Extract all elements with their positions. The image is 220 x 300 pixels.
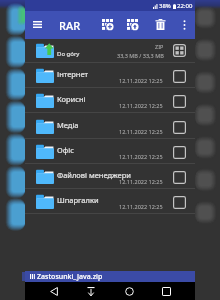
- button[interactable]: Шпаргалки: [25, 189, 195, 214]
- button[interactable]: Open navigation menu: [27, 11, 47, 38]
- button[interactable]: Add to archive: [96, 11, 119, 38]
- button[interactable]: Офіс: [25, 139, 195, 164]
- staticText: ZIP: [155, 43, 164, 50]
- button[interactable]: Downloads: [82, 282, 100, 300]
- staticText: 22:00: [177, 2, 193, 10]
- button[interactable]: More options: [175, 11, 194, 38]
- button[interactable]: Корисні: [25, 88, 195, 113]
- staticText: Інтернет: [57, 69, 88, 79]
- button[interactable]: Recent apps: [157, 282, 175, 300]
- button[interactable]: Home: [120, 282, 138, 300]
- button[interactable]: Do góry: [25, 38, 195, 63]
- staticText: Zastosunki_Java.zip: [37, 272, 103, 282]
- staticText: 12.11.2022 12:25: [119, 203, 163, 210]
- staticText: Офіс: [57, 145, 74, 155]
- staticText: Шпаргалки: [57, 195, 99, 205]
- button[interactable]: Switch to grid view: [172, 43, 187, 58]
- button[interactable]: Delete: [149, 11, 172, 38]
- staticText: RAR: [59, 18, 81, 33]
- staticText: Файлові менеджери: [57, 170, 131, 180]
- button[interactable]: Back: [45, 282, 63, 300]
- staticText: 33,3 MB / 33,3 MB: [117, 52, 164, 59]
- staticText: 12.11.2022 12:25: [119, 178, 163, 185]
- staticText: Do góry: [57, 50, 80, 58]
- button[interactable]: Інтернет: [25, 63, 195, 88]
- staticText: 38%: [159, 2, 171, 10]
- staticText: Медіа: [57, 120, 79, 130]
- staticText: 12.11.2022 12:25: [119, 102, 163, 109]
- button[interactable]: Extract archive: [121, 11, 144, 38]
- button[interactable]: Файлові менеджери: [25, 164, 195, 189]
- button[interactable]: Медіа: [25, 114, 195, 139]
- staticText: 12.11.2022 12:25: [119, 77, 163, 84]
- staticText: Корисні: [57, 94, 86, 104]
- staticText: 12.11.2022 12:25: [119, 128, 163, 135]
- staticText: 12.11.2022 12:25: [119, 153, 163, 160]
